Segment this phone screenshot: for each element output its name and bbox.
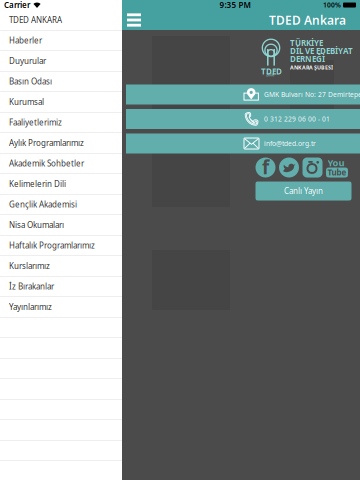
staticText: 9:35 PM: [219, 0, 250, 10]
button[interactable]: İz Bırakanlar: [0, 276, 122, 297]
staticText: Kurslarımız: [9, 261, 50, 271]
staticText: Kurumsal: [9, 97, 44, 107]
staticText: You: [327, 156, 344, 169]
button[interactable]: Facebook: [255, 157, 275, 177]
button[interactable]: Nisa Okumaları: [0, 215, 122, 235]
button[interactable]: Basın Odası: [0, 71, 122, 92]
staticText: Kelimelerin Dili: [9, 179, 66, 189]
staticText: Gençlik Akademisi: [9, 199, 77, 210]
button[interactable]: GMK Bulvarı No: 27 Demirtepe / Ankara: [126, 84, 360, 104]
staticText: info@tded.org.tr: [264, 139, 316, 148]
staticText: Basın Odası: [9, 76, 52, 87]
button[interactable]: Yayınlarımız: [0, 297, 122, 317]
staticText: Carrier: [4, 0, 30, 10]
staticText: İz Bırakanlar: [9, 281, 54, 292]
button[interactable]: Menu: [122, 8, 146, 32]
staticText: Faaliyetlerimiz: [9, 117, 62, 128]
staticText: 0 312 229 06 00 - 01: [264, 115, 330, 123]
staticText: TÜRKİYE: [290, 38, 323, 48]
button[interactable]: Canlı Yayın: [255, 181, 351, 200]
staticText: TDED ANKARA: [9, 15, 62, 25]
button[interactable]: Kelimelerin Dili: [0, 174, 122, 194]
staticText: Akademik Sohbetler: [9, 158, 84, 169]
staticText: TDED: [261, 66, 282, 77]
staticText: Haberler: [9, 35, 42, 46]
button[interactable]: TDED ANKARA: [0, 10, 122, 30]
button[interactable]: Kurslarımız: [0, 256, 122, 276]
staticText: Tube: [327, 167, 346, 178]
staticText: ANKARA ŞUBESİ: [290, 64, 333, 71]
button[interactable]: Kurumsal: [0, 92, 122, 112]
staticText: Nisa Okumaları: [9, 220, 64, 230]
button[interactable]: Haftalık Programlarımız: [0, 235, 122, 256]
staticText: GMK Bulvarı No: 27 Demirtepe / Ankara: [264, 90, 360, 99]
button[interactable]: Haberler: [0, 30, 122, 51]
staticText: DERNEĞİ: [290, 54, 325, 64]
button[interactable]: Twitter: [279, 157, 299, 177]
button[interactable]: 0 312 229 06 00 - 01: [126, 109, 360, 129]
staticText: Yayınlarımız: [9, 302, 52, 312]
button[interactable]: Akademik Sohbetler: [0, 153, 122, 174]
staticText: Canlı Yayın: [284, 186, 323, 196]
staticText: Duyurular: [9, 56, 46, 66]
staticText: 2008: [266, 72, 274, 77]
button[interactable]: YouTube: [326, 157, 348, 178]
button[interactable]: Instagram: [302, 157, 322, 177]
staticText: Aylık Programlarımız: [9, 138, 84, 148]
button[interactable]: Aylık Programlarımız: [0, 133, 122, 153]
staticText: f: [262, 155, 269, 179]
staticText: TDED Ankara: [269, 12, 346, 28]
button[interactable]: Duyurular: [0, 51, 122, 71]
button[interactable]: Gençlik Akademisi: [0, 194, 122, 215]
button[interactable]: info@tded.org.tr: [126, 133, 360, 153]
staticText: 100%: [323, 1, 341, 9]
staticText: DİL VE EDEBİYAT: [290, 46, 353, 56]
button[interactable]: Faaliyetlerimiz: [0, 112, 122, 133]
staticText: Haftalık Programlarımız: [9, 240, 95, 251]
